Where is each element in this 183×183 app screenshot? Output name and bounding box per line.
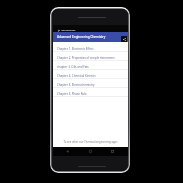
button[interactable]: Chapter 2. Properties of simple monomers	[53, 52, 128, 61]
staticText: Advanced Engineering Chemistry	[57, 35, 106, 39]
staticText: Chapter 2. Properties of simple monomers	[57, 56, 115, 60]
button[interactable]: Home	[88, 149, 92, 153]
button[interactable]: Recent apps	[110, 149, 114, 153]
button[interactable]: Share	[121, 36, 127, 42]
staticText: Chapter 5. Electrochemistry	[57, 83, 95, 87]
staticText: chapter 3. Oils and Fats	[57, 65, 89, 69]
button[interactable]: Chapter 5. Electrochemistry	[53, 79, 128, 88]
button[interactable]: Chapter 4. Chemical Kinetics	[53, 70, 128, 79]
button[interactable]: Chapter 6. Phase Rule	[53, 88, 128, 97]
button[interactable]: chapter 3. Oils and Fats	[53, 61, 128, 70]
staticText: To see other our Chemical engineering ap…	[53, 140, 128, 144]
staticText: Chapter 6. Phase Rule	[57, 92, 87, 96]
staticText: Chapter 4. Chemical Kinetics	[57, 74, 96, 78]
button[interactable]: Chapter 1. Electronic Effect	[53, 43, 128, 52]
staticText: Chapter 1. Electronic Effect	[57, 47, 94, 51]
staticText: USB connected	[61, 29, 76, 32]
button[interactable]: Back	[65, 149, 69, 153]
